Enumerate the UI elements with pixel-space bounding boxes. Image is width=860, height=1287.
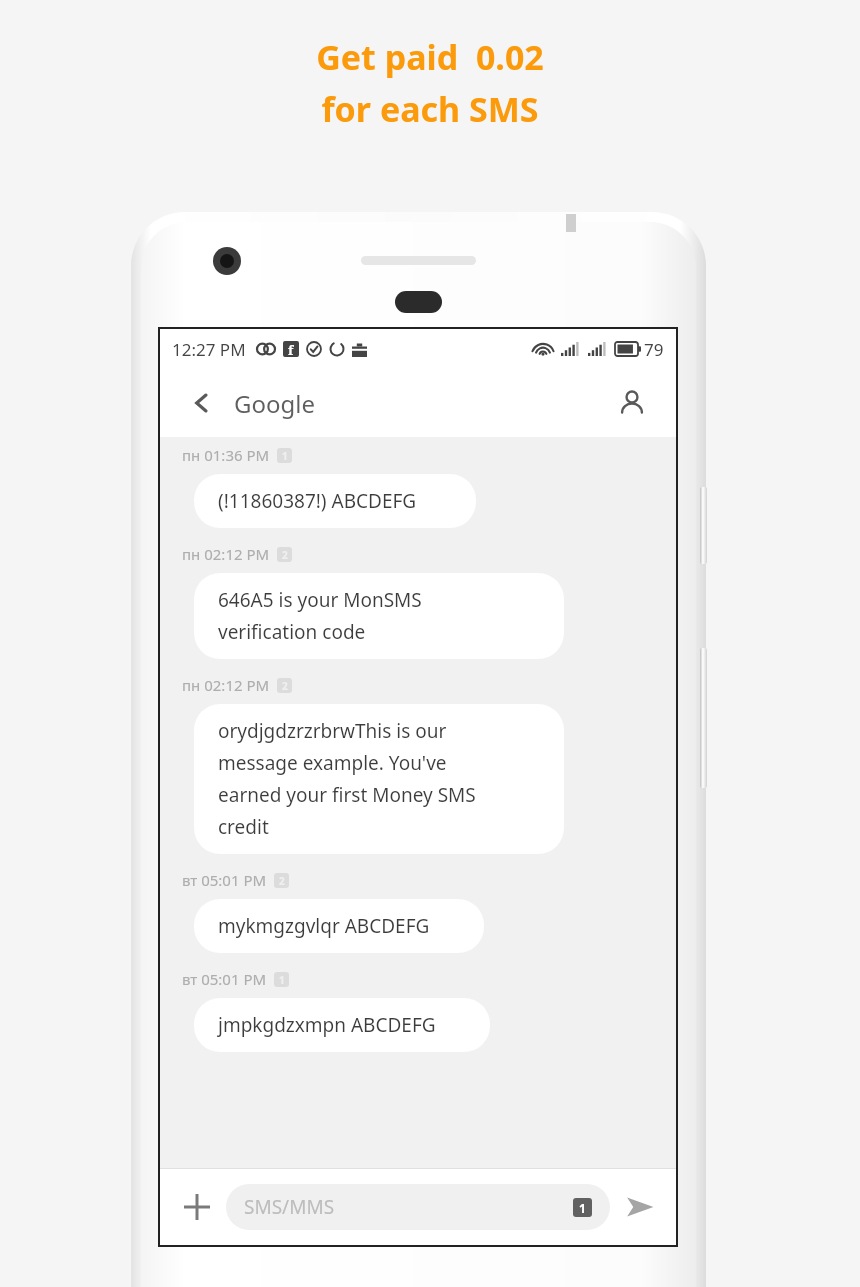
staticText: 1 xyxy=(282,449,288,463)
staticText: 2 xyxy=(282,548,288,562)
staticText: SMS/MMS xyxy=(244,1194,335,1220)
staticText: 646A5 is your MonSMS xyxy=(218,587,422,613)
button[interactable]: orydjgdzrzrbrwThis is our xyxy=(194,704,564,854)
staticText: f xyxy=(288,341,294,357)
staticText: earned your first Money SMS xyxy=(218,782,476,808)
staticText: 2 xyxy=(279,874,285,888)
staticText: mykmgzgvlqr ABCDEFG xyxy=(218,913,430,939)
staticText: пн 02:12 PM xyxy=(182,544,270,564)
staticText: пн 01:36 PM xyxy=(182,445,270,465)
staticText: for each SMS xyxy=(321,86,539,132)
staticText: 79 xyxy=(644,338,664,361)
staticText: verification code xyxy=(218,619,366,645)
button[interactable]: Back xyxy=(182,383,222,423)
button[interactable]: 646A5 is your MonSMS xyxy=(194,573,564,659)
button[interactable]: mykmgzgvlqr ABCDEFG xyxy=(194,899,484,953)
staticText: credit xyxy=(218,814,269,840)
staticText: message example. You've xyxy=(218,750,447,776)
staticText: 1 xyxy=(579,1200,586,1216)
button[interactable]: Send xyxy=(616,1183,664,1231)
button[interactable]: (!11860387!) ABCDEFG xyxy=(194,474,476,528)
staticText: вт 05:01 PM xyxy=(182,870,267,890)
staticText: Get paid 0.02 xyxy=(316,34,544,80)
staticText: 12:27 PM xyxy=(172,338,246,361)
staticText: Google xyxy=(234,387,315,420)
staticText: orydjgdzrzrbrwThis is our xyxy=(218,718,447,744)
staticText: (!11860387!) ABCDEFG xyxy=(218,488,417,514)
staticText: пн 02:12 PM xyxy=(182,675,270,695)
button[interactable]: SMS/MMS xyxy=(226,1184,610,1230)
button[interactable]: Add attachment xyxy=(174,1184,220,1230)
button[interactable]: Contact xyxy=(610,381,654,425)
staticText: вт 05:01 PM xyxy=(182,969,267,989)
staticText: 1 xyxy=(279,973,285,987)
button[interactable]: jmpkgdzxmpn ABCDEFG xyxy=(194,998,490,1052)
staticText: jmpkgdzxmpn ABCDEFG xyxy=(218,1012,436,1038)
staticText: 2 xyxy=(282,679,288,693)
